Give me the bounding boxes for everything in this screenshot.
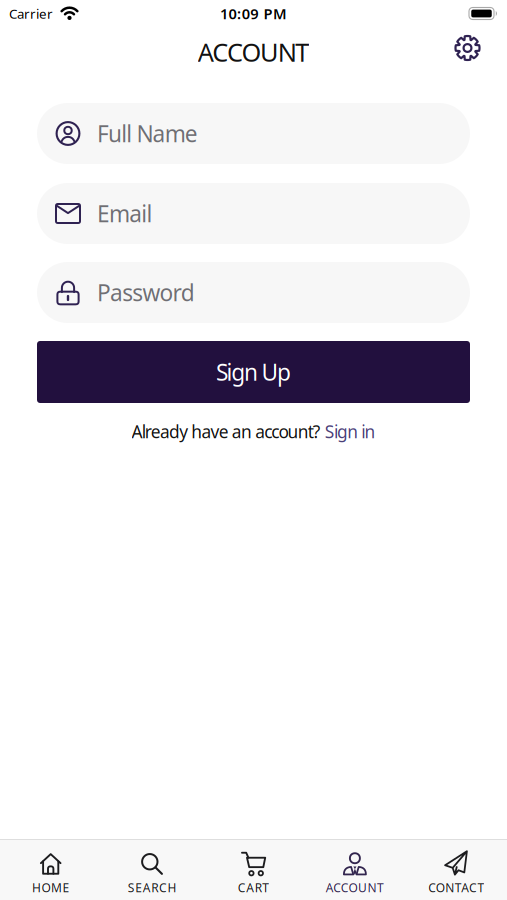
button[interactable]: Email	[37, 183, 470, 244]
staticText: Full Name	[97, 118, 198, 148]
staticText: Password	[97, 277, 195, 307]
staticText: 10:09 PM	[220, 4, 287, 23]
button[interactable]: CONTACT	[406, 839, 507, 900]
button[interactable]: ACCOUNT	[304, 839, 406, 900]
staticText: Email	[97, 198, 152, 228]
staticText: CONTACT	[428, 879, 484, 895]
button[interactable]: Password	[37, 262, 470, 323]
staticText: Sign in	[325, 420, 375, 443]
button[interactable]: Sign in	[325, 420, 375, 443]
button[interactable]: Sign Up	[37, 341, 470, 403]
button[interactable]: CART	[203, 839, 304, 900]
button[interactable]: SEARCH	[101, 839, 203, 900]
staticText: CART	[238, 879, 269, 895]
staticText: ACCOUNT	[326, 879, 384, 895]
staticText: HOME	[32, 879, 69, 895]
button[interactable]: HOME	[0, 839, 101, 900]
staticText: Carrier	[9, 5, 53, 22]
staticText: ACCOUNT	[198, 35, 309, 69]
button[interactable]: Full Name	[37, 103, 470, 164]
staticText: Already have an account?	[132, 420, 321, 443]
button[interactable]: Settings	[454, 34, 481, 62]
staticText: Sign Up	[216, 357, 291, 387]
staticText: SEARCH	[128, 879, 176, 895]
